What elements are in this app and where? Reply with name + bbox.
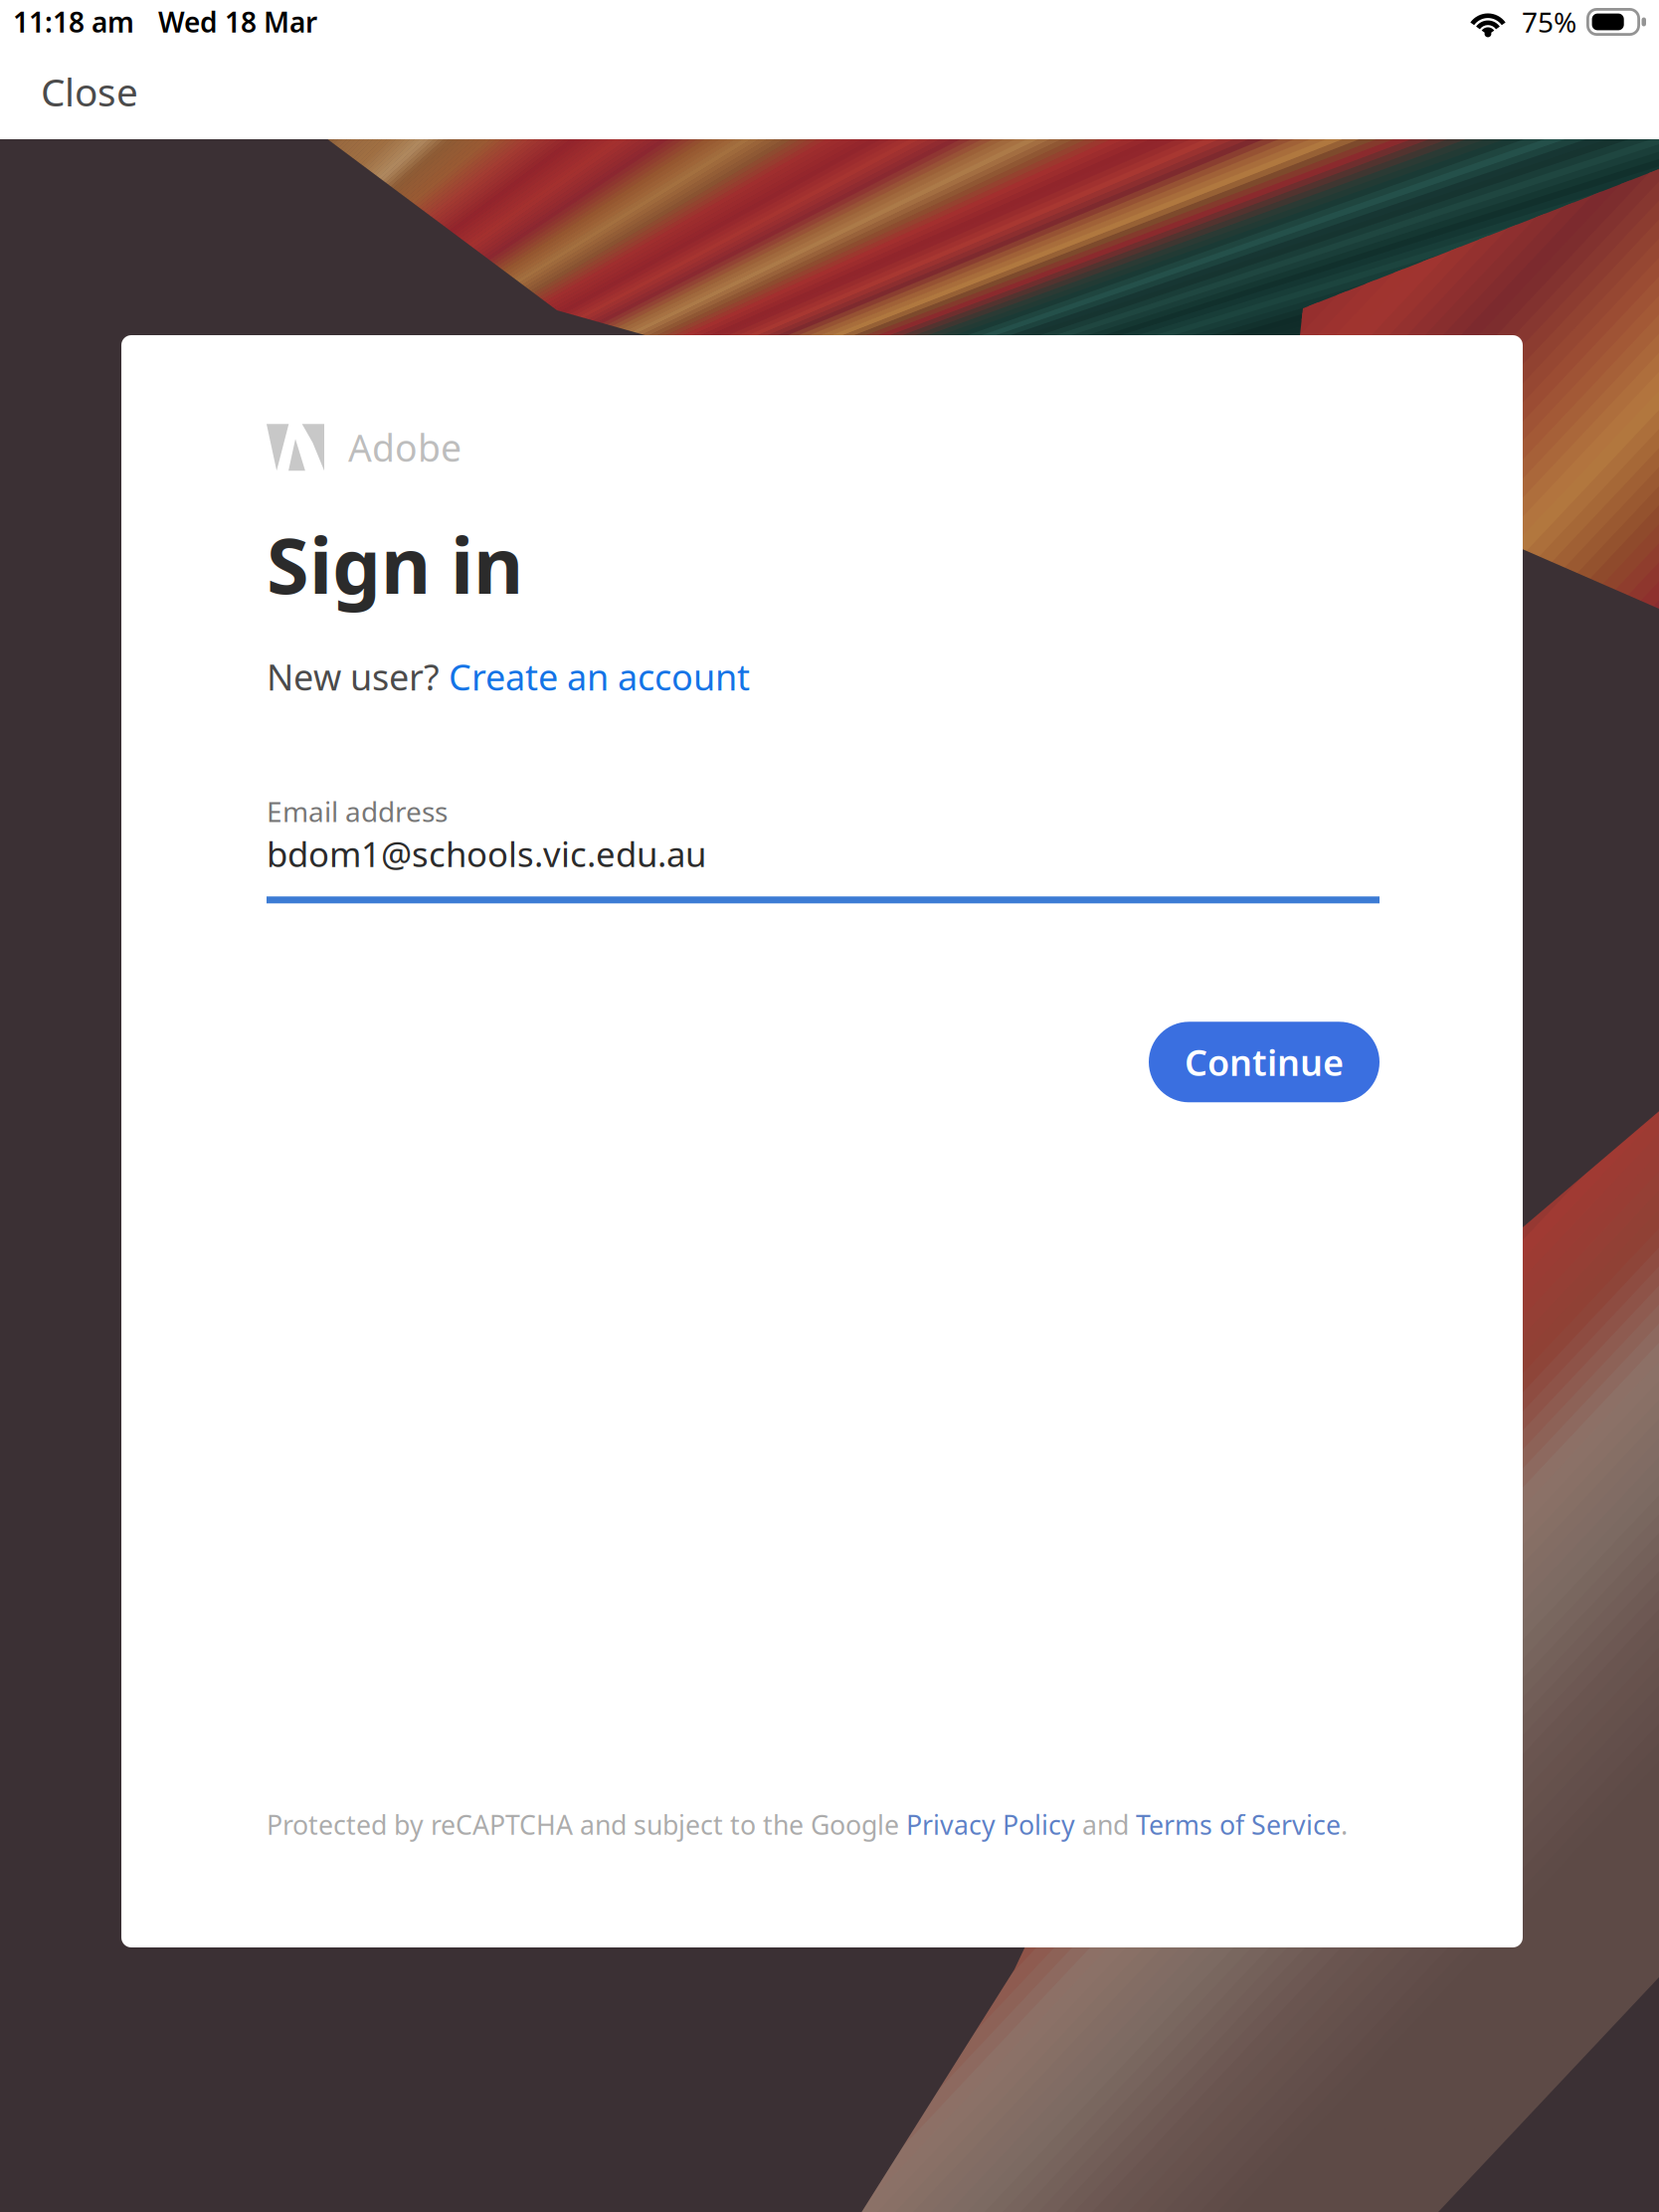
button[interactable]: Create an account — [449, 653, 750, 700]
staticText: 11:18 am — [13, 3, 134, 40]
staticText: Continue — [1185, 1038, 1344, 1086]
button[interactable]: Close — [0, 50, 179, 133]
staticText: Sign in — [267, 513, 523, 615]
staticText: Adobe — [348, 423, 461, 472]
button[interactable]: Continue — [1149, 1022, 1380, 1102]
staticText: 75% — [1522, 3, 1576, 40]
staticText: Create an account — [449, 653, 750, 700]
button[interactable]: Privacy Policy — [906, 1807, 1075, 1842]
button[interactable]: Terms of Service — [1136, 1807, 1341, 1842]
staticText: Terms of Service — [1136, 1807, 1341, 1842]
staticText: New user? — [267, 653, 449, 700]
staticText: Email address — [267, 793, 448, 830]
staticText: . — [1341, 1807, 1348, 1842]
staticText: Close — [41, 66, 138, 117]
staticText: Wed 18 Mar — [158, 3, 317, 40]
staticText: and — [1075, 1807, 1136, 1842]
staticText: bdom1@schools.vic.edu.au — [267, 831, 706, 877]
staticText: Protected by reCAPTCHA and subject to th… — [267, 1807, 906, 1842]
staticText: Privacy Policy — [906, 1807, 1075, 1842]
